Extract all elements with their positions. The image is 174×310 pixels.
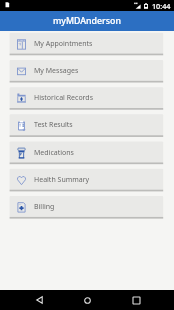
- staticText: Test Results: [34, 120, 73, 130]
- staticText: My Appointments: [34, 39, 93, 49]
- button[interactable]: My Messages: [10, 60, 164, 82]
- button[interactable]: Medications: [10, 142, 164, 164]
- button[interactable]: My Appointments: [10, 33, 164, 55]
- staticText: Health Summary: [34, 175, 90, 185]
- staticText: My Messages: [34, 66, 79, 76]
- button[interactable]: Health Summary: [10, 169, 164, 191]
- staticText: Medications: [34, 148, 74, 158]
- button[interactable]: Recents: [126, 290, 146, 310]
- button[interactable]: Billing: [10, 196, 164, 218]
- button[interactable]: Historical Records: [10, 87, 164, 109]
- staticText: Billing: [34, 202, 55, 212]
- staticText: myMDAnderson: [53, 15, 121, 27]
- button[interactable]: Home: [77, 290, 97, 310]
- button[interactable]: Test Results: [10, 114, 164, 136]
- staticText: 10:44: [152, 1, 171, 11]
- button[interactable]: Back: [29, 290, 49, 310]
- staticText: Historical Records: [34, 93, 94, 103]
